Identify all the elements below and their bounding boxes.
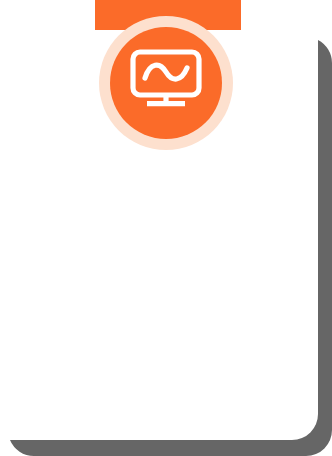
button[interactable]: Monitoring dashboard [99,16,233,150]
